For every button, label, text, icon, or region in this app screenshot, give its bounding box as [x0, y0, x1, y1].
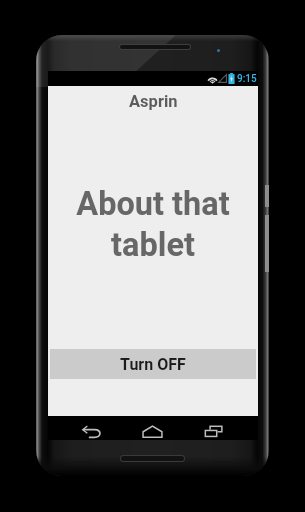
staticText: Asprin	[129, 92, 178, 111]
button[interactable]: Recent apps	[193, 417, 233, 439]
button[interactable]: Turn OFF	[50, 349, 256, 379]
button[interactable]: Back	[71, 417, 111, 439]
button[interactable]: Home	[132, 417, 172, 439]
staticText: 9:15	[237, 73, 257, 85]
staticText: Turn OFF	[120, 355, 186, 374]
staticText: About that tablet	[48, 185, 258, 264]
